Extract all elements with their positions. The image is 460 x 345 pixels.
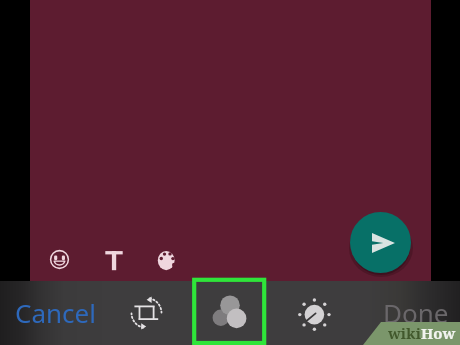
button[interactable]: Draw xyxy=(156,250,177,271)
button[interactable]: Add sticker xyxy=(49,249,70,270)
staticText: Done xyxy=(383,295,449,330)
button[interactable]: Done xyxy=(376,287,456,337)
button[interactable]: Cancel xyxy=(5,287,105,337)
staticText: How xyxy=(421,323,456,341)
button[interactable]: Filters xyxy=(211,293,250,332)
button[interactable]: Add text xyxy=(104,250,125,271)
button[interactable]: Adjust brightness xyxy=(295,295,333,333)
staticText: Cancel xyxy=(15,295,96,330)
button[interactable]: Send xyxy=(350,212,411,273)
button[interactable]: Crop and rotate xyxy=(128,294,166,332)
staticText: wiki xyxy=(388,323,421,341)
